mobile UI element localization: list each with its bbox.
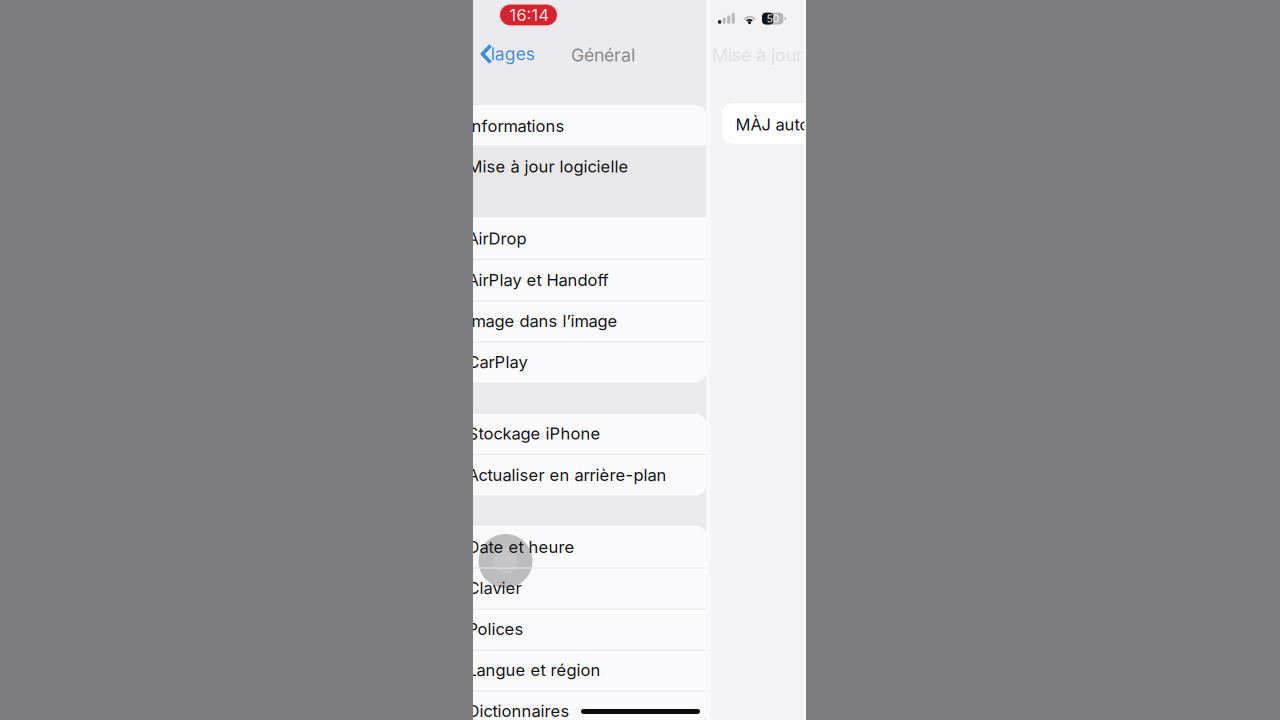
button[interactable]: AirDrop <box>473 218 706 259</box>
button[interactable]: Informations <box>473 106 706 147</box>
staticText: MÀJ auto <box>735 114 809 134</box>
staticText: Mise à jour logicielle <box>467 156 628 176</box>
staticText: AirDrop <box>467 228 526 248</box>
staticText: lages <box>491 43 535 64</box>
staticText: Général <box>571 44 635 66</box>
button[interactable]: Dictionnaires <box>473 691 706 720</box>
staticText: Langue et région <box>467 660 600 680</box>
staticText: CarPlay <box>467 352 527 372</box>
staticText: AirPlay et Handoff <box>467 270 608 290</box>
button[interactable]: Langue et région <box>473 650 706 691</box>
staticText: Mise à jour l <box>712 44 812 66</box>
staticText: Date et heure <box>467 537 574 557</box>
staticText: 50 <box>766 12 779 25</box>
staticText: Informations <box>467 116 564 136</box>
button[interactable]: Mise à jour logicielle <box>473 146 706 187</box>
staticText: Dictionnaires <box>467 701 569 720</box>
button[interactable]: Actualiser en arrière-plan <box>473 455 706 496</box>
staticText: 16:14 <box>509 5 549 25</box>
staticText: Image dans l’image <box>467 311 617 331</box>
button[interactable]: CarPlay <box>473 342 706 383</box>
button[interactable]: AirPlay et Handoff <box>473 260 706 301</box>
button[interactable]: Date et heure <box>473 527 706 568</box>
staticText: Stockage iPhone <box>467 423 600 443</box>
button[interactable]: Polices <box>473 609 706 650</box>
staticText: Actualiser en arrière-plan <box>467 465 666 485</box>
button[interactable]: Back to Réglages <box>479 41 545 69</box>
staticText: Clavier <box>467 578 521 598</box>
button[interactable]: Clavier <box>473 568 706 609</box>
button[interactable]: Image dans l’image <box>473 301 706 342</box>
staticText: Polices <box>467 619 523 639</box>
button[interactable]: Stockage iPhone <box>473 413 706 454</box>
